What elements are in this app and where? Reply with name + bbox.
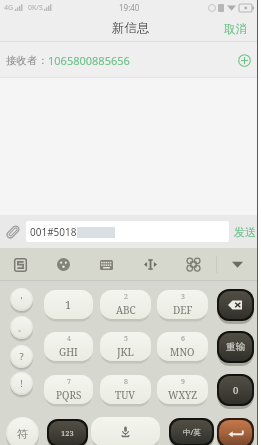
- staticText: MNO: [170, 345, 195, 359]
- staticText: ': [20, 294, 23, 306]
- staticText: 取消: [224, 22, 247, 36]
- staticText: 中/英: [183, 427, 201, 437]
- button[interactable]: Emoji: [54, 248, 72, 281]
- staticText: 7: [67, 377, 71, 387]
- staticText: 19:40: [119, 2, 140, 13]
- button[interactable]: Enter: [217, 418, 254, 445]
- staticText: 5: [124, 334, 128, 344]
- button[interactable]: Move cursor: [141, 248, 159, 281]
- staticText: 重输: [226, 341, 245, 353]
- staticText: 2: [124, 292, 128, 302]
- staticText: 。: [18, 323, 26, 333]
- staticText: PQRS: [56, 388, 82, 402]
- button[interactable]: 9: [157, 375, 208, 407]
- staticText: 符: [17, 427, 28, 441]
- staticText: 4G: [4, 3, 14, 13]
- button[interactable]: ?: [10, 345, 33, 370]
- staticText: 接收者：: [6, 54, 48, 67]
- staticText: JKL: [117, 345, 134, 359]
- button[interactable]: 8: [100, 375, 151, 407]
- staticText: 0K/S: [28, 3, 43, 13]
- button[interactable]: Sogou input: [11, 248, 29, 281]
- button[interactable]: 中/英: [169, 418, 214, 445]
- button[interactable]: 重输: [217, 331, 254, 366]
- staticText: ?: [19, 350, 24, 363]
- staticText: 001#5018: [30, 225, 77, 239]
- button[interactable]: !: [10, 372, 33, 397]
- button[interactable]: 5: [100, 332, 151, 364]
- staticText: 发送: [234, 225, 256, 239]
- button[interactable]: 。: [10, 316, 33, 341]
- button[interactable]: 6: [157, 332, 208, 364]
- button[interactable]: 4: [44, 332, 93, 364]
- staticText: DEF: [173, 303, 193, 317]
- button[interactable]: 2: [100, 290, 151, 322]
- staticText: 8: [124, 377, 128, 387]
- staticText: GHI: [59, 345, 78, 359]
- button[interactable]: 符: [6, 417, 39, 445]
- button[interactable]: 取消: [212, 18, 261, 40]
- staticText: 3: [181, 292, 185, 302]
- button[interactable]: Hide keyboard: [228, 248, 246, 281]
- button[interactable]: Shortcuts: [184, 248, 202, 281]
- button[interactable]: Keyboard layout: [97, 248, 115, 281]
- button[interactable]: 7: [44, 375, 93, 407]
- staticText: WXYZ: [168, 388, 198, 402]
- button[interactable]: ': [10, 288, 33, 313]
- staticText: 新信息: [112, 20, 150, 36]
- button[interactable]: 发送: [229, 217, 261, 247]
- staticText: 1: [65, 297, 72, 312]
- button[interactable]: Delete: [217, 289, 254, 324]
- staticText: ABC: [116, 303, 136, 317]
- button[interactable]: Voice input: [91, 417, 160, 445]
- button[interactable]: 3: [157, 290, 208, 322]
- staticText: 6: [181, 334, 185, 344]
- staticText: 123: [61, 428, 74, 438]
- staticText: TUV: [115, 388, 136, 402]
- button[interactable]: 123: [47, 419, 88, 445]
- staticText: 1065800885656: [48, 53, 130, 68]
- button[interactable]: Add recipient: [231, 47, 257, 73]
- button[interactable]: Attach: [0, 219, 26, 245]
- staticText: !: [20, 377, 23, 390]
- staticText: 4: [67, 334, 71, 344]
- button[interactable]: 0: [217, 374, 254, 409]
- button[interactable]: 1: [44, 290, 93, 322]
- button[interactable]: 001#5018: [26, 221, 229, 242]
- staticText: 9: [181, 377, 185, 387]
- staticText: 0: [233, 384, 239, 397]
